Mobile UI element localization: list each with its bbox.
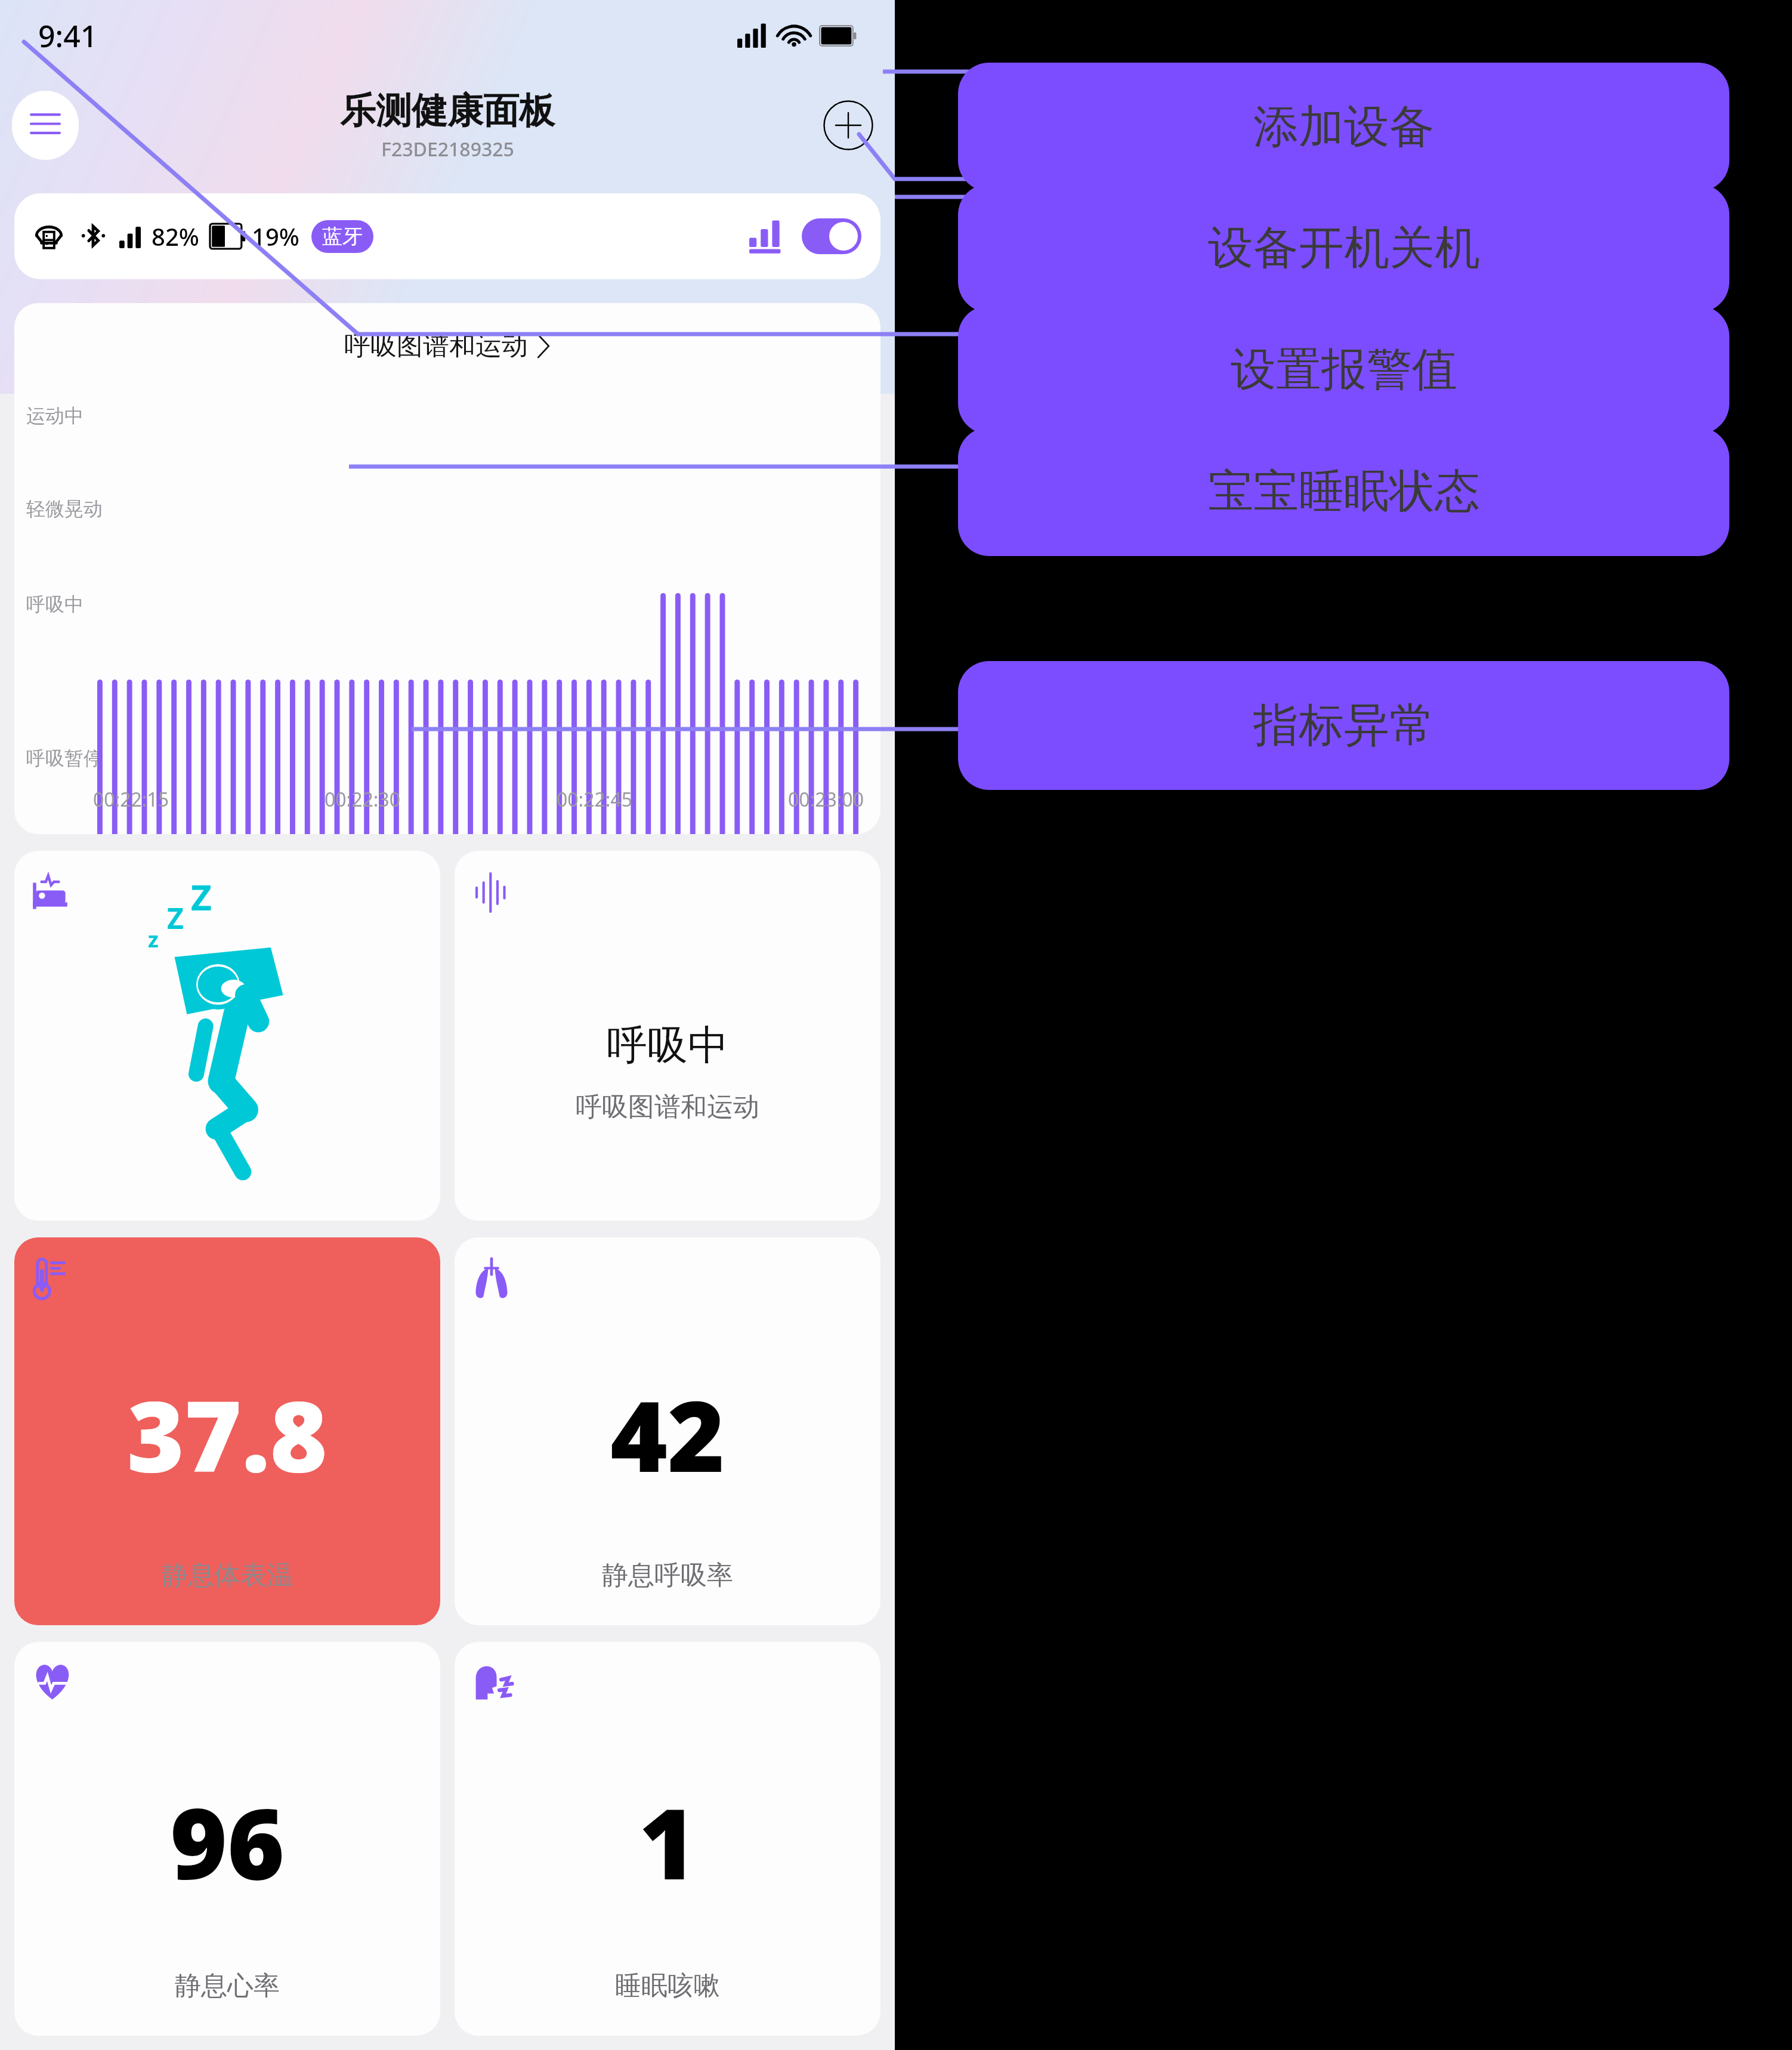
- staticText: 呼吸中: [607, 1020, 728, 1072]
- staticText: 设置报警值: [1231, 341, 1457, 399]
- staticText: 添加设备: [1253, 98, 1435, 156]
- button[interactable]: 1: [455, 1642, 880, 2036]
- staticText: 设备开机关机: [1208, 220, 1480, 277]
- button[interactable]: 设置报警值: [958, 305, 1729, 434]
- button[interactable]: 呼吸图谱和运动: [14, 303, 880, 834]
- staticText: 宝宝睡眠状态: [1208, 463, 1480, 520]
- button[interactable]: Power toggle: [802, 218, 861, 254]
- button[interactable]: 宝宝睡眠状态: [958, 427, 1729, 556]
- button[interactable]: Add device: [823, 100, 873, 150]
- staticText: 00:22:30: [325, 786, 400, 813]
- staticText: 42: [610, 1367, 725, 1501]
- staticText: z: [148, 925, 159, 954]
- staticText: 乐测健康面板: [340, 88, 555, 134]
- button[interactable]: 蓝牙: [322, 224, 363, 249]
- button[interactable]: Statistics: [749, 218, 787, 254]
- button[interactable]: 42: [455, 1237, 880, 1625]
- staticText: 静息呼吸率: [602, 1559, 733, 1592]
- button[interactable]: Z: [14, 851, 440, 1221]
- staticText: 呼吸图谱和运动: [344, 329, 528, 362]
- staticText: 呼吸中: [26, 592, 84, 616]
- staticText: 呼吸暂停: [26, 746, 103, 770]
- staticText: F23DE2189325: [381, 136, 514, 162]
- button[interactable]: 96: [14, 1642, 440, 2036]
- button[interactable]: 添加设备: [958, 63, 1729, 192]
- staticText: 静息体表温: [162, 1559, 293, 1592]
- staticText: 轻微晃动: [26, 497, 103, 521]
- staticText: 蓝牙: [322, 224, 363, 249]
- staticText: 睡眠咳嗽: [615, 1969, 720, 2002]
- staticText: 1: [639, 1775, 697, 1908]
- staticText: 19%: [252, 220, 299, 252]
- staticText: 00:22:45: [557, 786, 632, 813]
- button[interactable]: 37.8: [14, 1237, 440, 1625]
- staticText: 00:22:15: [93, 786, 169, 813]
- staticText: Z: [191, 872, 212, 921]
- staticText: 指标异常: [1253, 697, 1435, 754]
- staticText: 呼吸图谱和运动: [576, 1091, 759, 1123]
- staticText: 静息心率: [175, 1969, 280, 2002]
- button[interactable]: 指标异常: [958, 661, 1729, 790]
- staticText: 82%: [152, 220, 199, 252]
- staticText: 运动中: [26, 404, 84, 428]
- button[interactable]: 呼吸中: [455, 851, 880, 1221]
- button[interactable]: 设备开机关机: [958, 184, 1729, 313]
- staticText: Z: [167, 899, 184, 937]
- button[interactable]: 82%: [33, 193, 861, 279]
- button[interactable]: Menu: [12, 91, 79, 160]
- staticText: 9:41: [38, 16, 98, 56]
- staticText: 37.8: [127, 1367, 327, 1501]
- staticText: 96: [170, 1775, 285, 1908]
- staticText: 00:23:00: [788, 786, 864, 813]
